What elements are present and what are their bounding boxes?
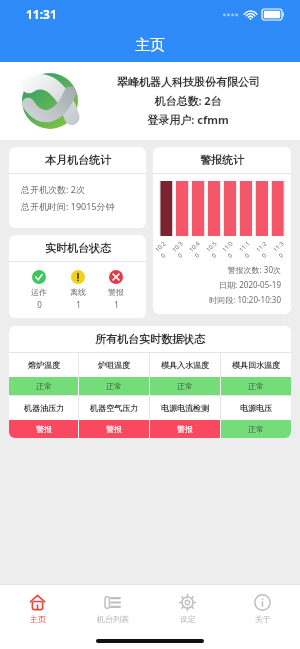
button[interactable]: 正常: [221, 420, 291, 438]
button[interactable]: 机台列表: [75, 585, 150, 633]
staticText: 熔炉温度: [28, 360, 60, 370]
staticText: 炉咀温度: [98, 360, 130, 370]
staticText: 离线: [70, 287, 86, 297]
button[interactable]: 正常: [9, 377, 78, 395]
button[interactable]: 正常: [221, 377, 291, 395]
staticText: 警报: [106, 424, 122, 434]
staticText: 10:20: [153, 238, 175, 260]
staticText: 警报统计: [200, 153, 244, 167]
button[interactable]: 设定: [150, 585, 225, 633]
staticText: 主页: [135, 36, 165, 55]
button[interactable]: 熔炉温度: [9, 353, 78, 377]
staticText: 所有机台实时数据状态: [95, 332, 205, 346]
staticText: 设定: [180, 614, 196, 624]
staticText: 主页: [30, 614, 46, 624]
other: 设定: [179, 594, 196, 611]
staticText: 总开机次数: 2次: [21, 183, 85, 195]
button[interactable]: 警报: [108, 270, 124, 310]
button[interactable]: 炉咀温度: [79, 353, 149, 377]
staticText: 警报: [108, 287, 124, 297]
staticText: 登录用户: cfmm: [147, 112, 229, 127]
staticText: 机器空气压力: [90, 403, 138, 413]
staticText: 正常: [248, 424, 264, 434]
button[interactable]: 警报统计: [153, 147, 291, 314]
other: 主页: [29, 594, 46, 611]
staticText: 运作: [31, 287, 47, 297]
staticText: 10:40: [187, 238, 209, 260]
button[interactable]: 所有机台实时数据状态: [9, 326, 291, 438]
staticText: 11:00: [220, 238, 242, 260]
button[interactable]: 警报: [9, 420, 78, 438]
button[interactable]: 离线: [70, 270, 86, 310]
staticText: 总开机时间: 19015分钟: [21, 200, 115, 212]
staticText: 1: [76, 299, 81, 310]
button[interactable]: 电源电压: [221, 396, 291, 420]
button[interactable]: 运作: [31, 270, 47, 310]
staticText: 本月机台统计: [45, 153, 111, 167]
other: 机台列表: [104, 594, 121, 611]
button[interactable]: 警报: [79, 420, 149, 438]
staticText: 关于: [255, 614, 271, 624]
button[interactable]: 正常: [150, 377, 220, 395]
staticText: 11:30: [271, 238, 291, 260]
button[interactable]: 机器空气压力: [79, 396, 149, 420]
staticText: 正常: [106, 381, 122, 391]
staticText: 警报: [36, 424, 52, 434]
staticText: 正常: [248, 381, 264, 391]
staticText: 电源电压: [240, 403, 272, 413]
staticText: 模具入水温度: [161, 360, 209, 370]
button[interactable]: 电源电流检测: [150, 396, 220, 420]
button[interactable]: 正常: [79, 377, 149, 395]
staticText: 机器油压力: [24, 403, 64, 413]
staticText: 11:31: [26, 6, 57, 22]
staticText: 正常: [177, 381, 193, 391]
button[interactable]: 机器油压力: [9, 396, 78, 420]
staticText: 警报次数: 30次: [227, 264, 281, 275]
staticText: 机台总数: 2台: [154, 93, 222, 108]
button[interactable]: 模具回水温度: [221, 353, 291, 377]
staticText: 11:20: [254, 238, 276, 260]
staticText: 11:10: [237, 238, 259, 260]
other: 关于: [254, 594, 271, 611]
staticText: 时间段: 10:20-10:30: [209, 294, 281, 305]
staticText: 警报: [177, 424, 193, 434]
staticText: 模具回水温度: [232, 360, 280, 370]
staticText: 日期: 2020-05-19: [219, 279, 281, 290]
button[interactable]: 本月机台统计: [9, 147, 146, 228]
button[interactable]: 关于: [225, 585, 300, 633]
button[interactable]: 翠峰机器人科技股份有限公司: [0, 62, 300, 140]
button[interactable]: 警报: [150, 420, 220, 438]
staticText: 1: [114, 299, 119, 310]
staticText: 0: [37, 299, 42, 310]
staticText: 10:50: [204, 238, 226, 260]
staticText: 正常: [36, 381, 52, 391]
staticText: 电源电流检测: [161, 403, 209, 413]
staticText: 10:30: [170, 238, 192, 260]
staticText: 翠峰机器人科技股份有限公司: [117, 75, 260, 89]
staticText: 实时机台状态: [45, 241, 111, 255]
button[interactable]: 实时机台状态: [9, 235, 146, 318]
button[interactable]: 模具入水温度: [150, 353, 220, 377]
button[interactable]: 主页: [0, 585, 75, 633]
staticText: 机台列表: [97, 614, 129, 624]
